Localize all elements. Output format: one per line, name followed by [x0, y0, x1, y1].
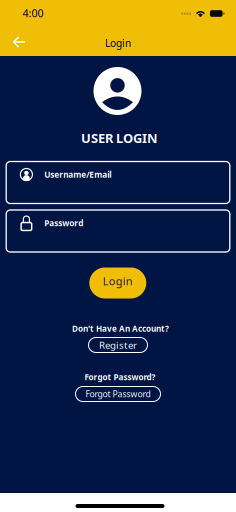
button[interactable]: Back: [2, 27, 36, 57]
button[interactable]: Username/Email: [6, 161, 230, 203]
button[interactable]: Login: [89, 267, 146, 298]
staticText: Password: [44, 217, 83, 229]
staticText: Forgot Password?: [84, 371, 155, 383]
staticText: USER LOGIN: [81, 129, 158, 147]
button[interactable]: Password: [6, 210, 230, 252]
staticText: Login: [103, 274, 133, 288]
staticText: Login: [105, 36, 131, 50]
staticText: Register: [99, 338, 137, 352]
staticText: Don't Have An Account?: [72, 323, 169, 334]
staticText: Username/Email: [44, 169, 111, 180]
staticText: Forgot Password: [85, 388, 150, 400]
button[interactable]: Register: [88, 337, 147, 352]
button[interactable]: Forgot Password: [75, 386, 160, 401]
staticText: 4:00: [22, 6, 43, 20]
